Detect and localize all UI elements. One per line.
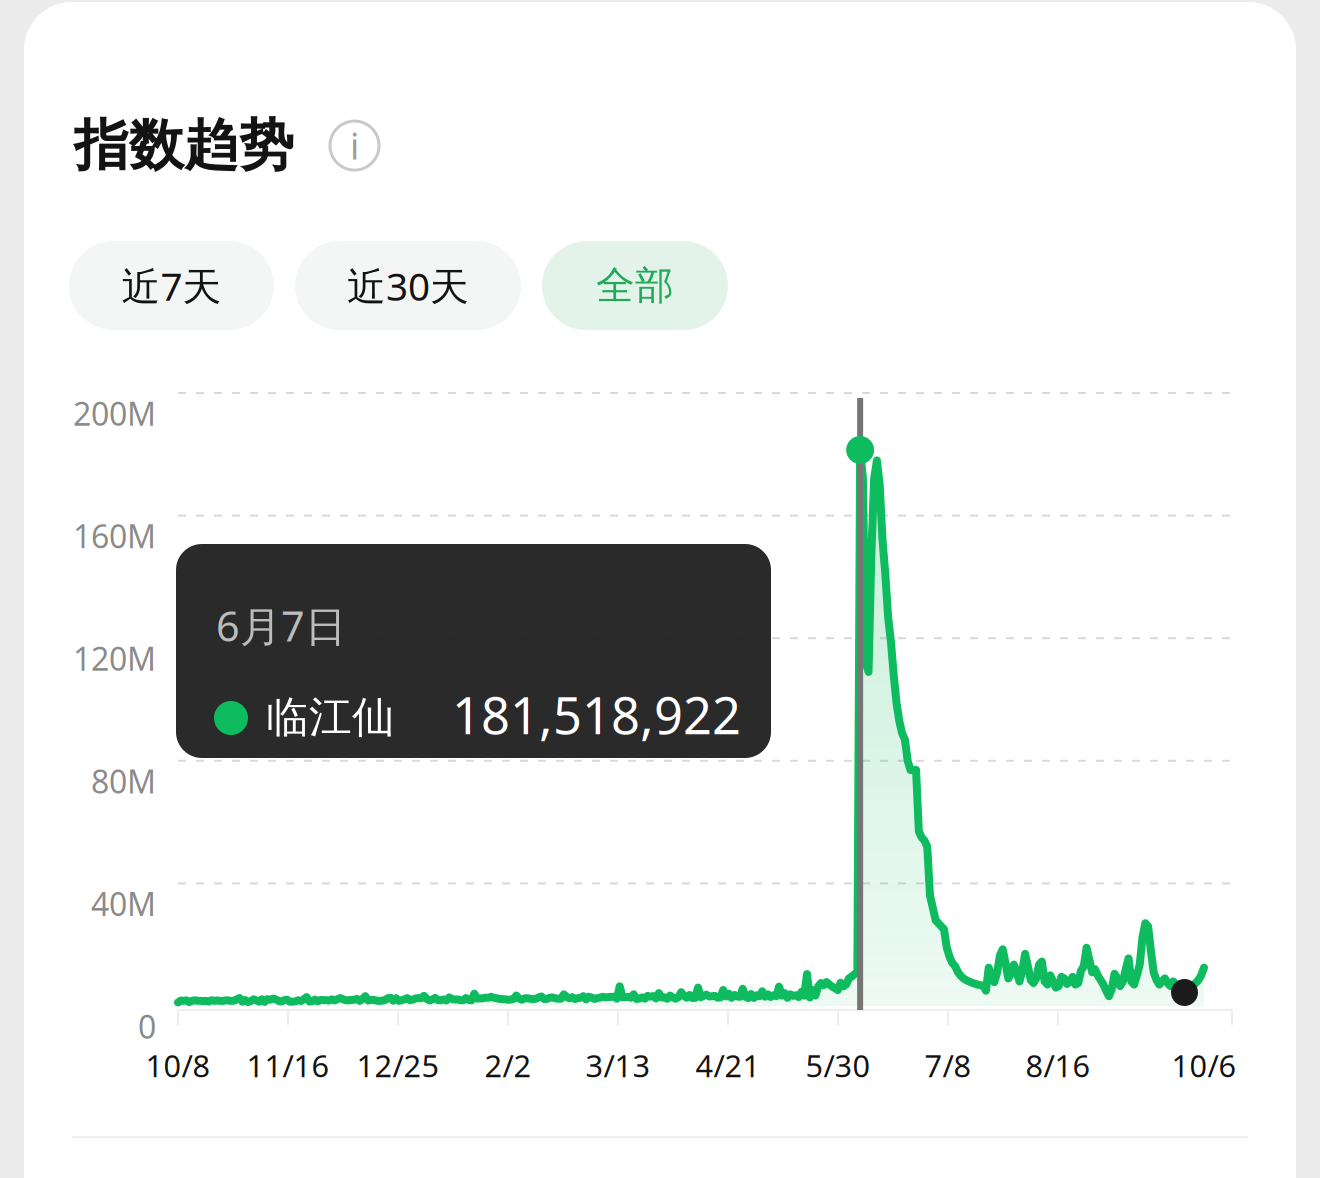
staticText: 181,518,922 bbox=[452, 681, 741, 748]
staticText: 10/6 bbox=[1171, 1045, 1236, 1086]
staticText: 指数趋势 bbox=[74, 112, 294, 179]
staticText: 6月7日 bbox=[216, 598, 346, 653]
staticText: 12/25 bbox=[356, 1045, 439, 1086]
staticText: 7/8 bbox=[924, 1045, 971, 1086]
staticText: 11/16 bbox=[246, 1045, 329, 1086]
staticText: 5/30 bbox=[805, 1045, 870, 1086]
staticText: 全部 bbox=[596, 262, 674, 309]
button[interactable]: 指数趋势说明 bbox=[330, 121, 379, 170]
button[interactable]: 全部 bbox=[542, 241, 728, 330]
staticText: 4/21 bbox=[695, 1045, 760, 1086]
staticText: 40M bbox=[91, 882, 156, 925]
staticText: 临江仙 bbox=[266, 691, 395, 743]
staticText: 近30天 bbox=[347, 260, 469, 311]
staticText: 200M bbox=[73, 392, 156, 434]
staticText: 3/13 bbox=[585, 1045, 650, 1086]
staticText: i bbox=[350, 122, 359, 169]
staticText: 0 bbox=[138, 1005, 156, 1047]
staticText: 120M bbox=[73, 637, 156, 680]
staticText: 8/16 bbox=[1025, 1045, 1090, 1086]
staticText: 160M bbox=[73, 515, 156, 557]
staticText: 80M bbox=[91, 760, 156, 802]
staticText: 2/2 bbox=[484, 1045, 531, 1086]
button[interactable]: 近7天 bbox=[69, 241, 274, 330]
staticText: 近7天 bbox=[121, 260, 221, 311]
button[interactable]: 近30天 bbox=[295, 241, 521, 330]
staticText: 10/8 bbox=[145, 1045, 210, 1086]
